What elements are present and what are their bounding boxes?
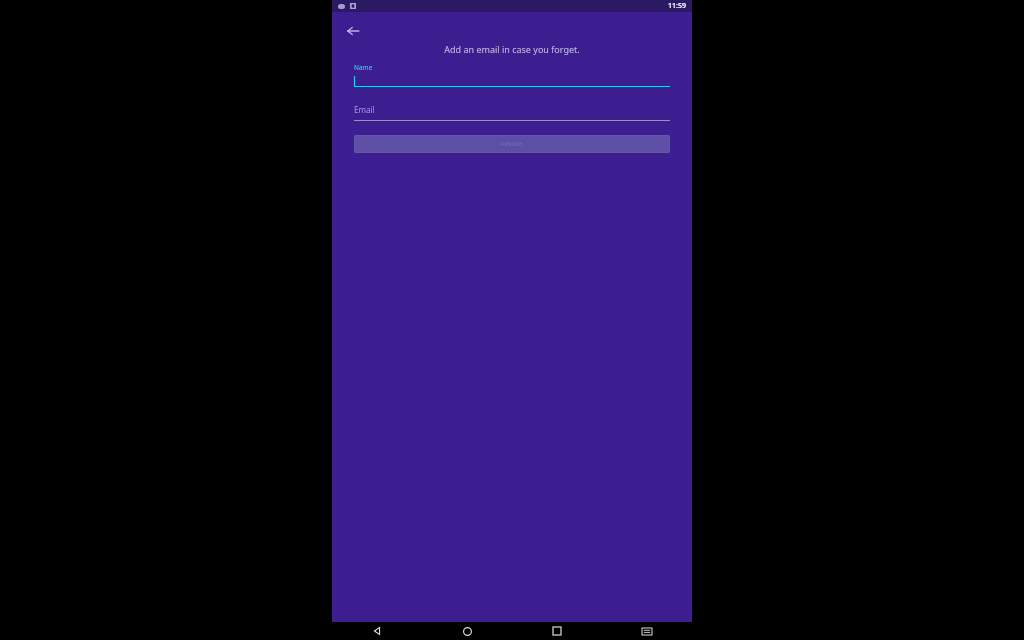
staticText: Name (354, 63, 373, 72)
button[interactable]: Recent apps (512, 622, 602, 640)
button[interactable]: Name (354, 63, 670, 87)
staticText: Add an email in case you forget. (332, 43, 692, 55)
button[interactable]: Back (338, 16, 368, 46)
button[interactable]: Back (332, 622, 422, 640)
button[interactable]: Email (354, 104, 670, 121)
staticText: 11:59 (668, 1, 686, 11)
button[interactable]: Keyboard (602, 622, 692, 640)
staticText: FINISH (501, 140, 524, 148)
staticText: Email (354, 104, 375, 115)
button[interactable]: Home (422, 622, 512, 640)
